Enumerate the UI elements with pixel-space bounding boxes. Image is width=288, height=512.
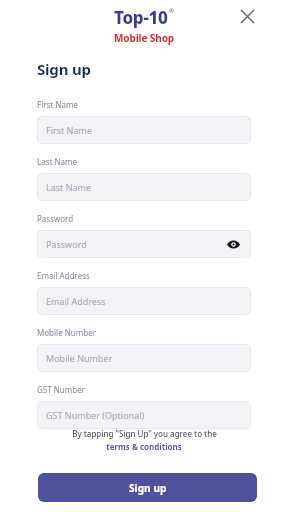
button[interactable]: Sign up [38,473,257,502]
staticText: Password [46,238,87,250]
button[interactable]: Last Name [37,173,251,201]
staticText: Email Address [37,270,90,281]
button[interactable]: terms & conditions [106,441,182,452]
button[interactable]: GST Number (Optional) [37,401,251,429]
staticText: ® [169,7,174,15]
staticText: GST Number [37,384,85,395]
staticText: Top-10 [114,6,168,29]
staticText: Last Name [37,156,78,167]
staticText: Last Name [46,181,92,193]
staticText: Sign up [37,59,91,79]
staticText: First Name [46,124,92,136]
button[interactable]: Password [37,230,251,258]
button[interactable]: Email Address [37,287,251,315]
button[interactable]: First Name [37,116,251,144]
button[interactable]: Close [236,5,258,27]
staticText: terms & conditions [106,441,182,452]
staticText: Email Address [46,295,106,307]
staticText: GST Number (Optional) [46,409,145,421]
button[interactable]: Show password [224,235,242,253]
staticText: Mobile Shop [114,31,175,45]
button[interactable]: Mobile Number [37,344,251,372]
staticText: By tapping "Sign Up" you agree to the [72,428,217,439]
staticText: Mobile Number [46,352,113,364]
staticText: Password [37,213,74,224]
staticText: Sign up [129,481,167,495]
staticText: Mobile Number [37,327,96,338]
staticText: First Name [37,99,78,110]
